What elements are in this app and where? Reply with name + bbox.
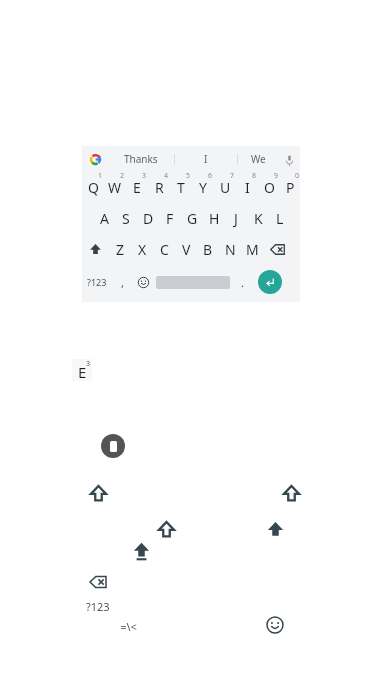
button[interactable]: We <box>238 146 278 172</box>
staticText: E <box>78 362 87 382</box>
button[interactable]: Shift <box>156 519 177 540</box>
button[interactable]: E <box>72 359 92 381</box>
button[interactable]: Shift <box>82 234 109 265</box>
staticText: 1 <box>98 171 103 181</box>
staticText: I <box>204 152 208 166</box>
button[interactable]: G <box>181 203 203 234</box>
staticText: W <box>108 178 122 197</box>
button[interactable]: T <box>170 172 192 203</box>
button[interactable]: Emoji <box>132 265 154 299</box>
button[interactable]: W <box>104 172 126 203</box>
staticText: D <box>143 209 154 228</box>
button[interactable]: ?123 <box>82 265 112 299</box>
button[interactable]: M <box>241 234 263 265</box>
staticText: 0 <box>295 171 300 181</box>
button[interactable]: B <box>197 234 219 265</box>
staticText: 5 <box>186 171 191 181</box>
button[interactable]: O <box>258 172 280 203</box>
staticText: C <box>160 240 169 259</box>
button[interactable]: . <box>232 265 252 299</box>
staticText: X <box>138 240 147 259</box>
button[interactable]: Caps lock <box>265 519 286 540</box>
staticText: . <box>241 275 244 290</box>
staticText: 7 <box>230 171 235 181</box>
staticText: Q <box>88 178 99 197</box>
staticText: M <box>246 240 259 259</box>
staticText: 3 <box>86 359 91 369</box>
button[interactable]: E <box>126 172 148 203</box>
staticText: Z <box>116 240 125 259</box>
staticText: U <box>220 178 231 197</box>
staticText: 8 <box>252 171 257 181</box>
staticText: P <box>286 178 295 197</box>
staticText: V <box>182 240 191 259</box>
button[interactable]: I <box>175 146 237 172</box>
button[interactable]: , <box>112 265 132 299</box>
button[interactable]: K <box>247 203 269 234</box>
button[interactable]: L <box>269 203 291 234</box>
button[interactable]: D <box>137 203 159 234</box>
staticText: E <box>133 178 141 197</box>
staticText: Y <box>199 178 207 197</box>
button[interactable]: I <box>236 172 258 203</box>
staticText: J <box>234 209 238 228</box>
button[interactable]: Enter <box>252 265 288 299</box>
button[interactable]: Y <box>192 172 214 203</box>
staticText: 4 <box>164 171 169 181</box>
staticText: , <box>121 275 124 290</box>
staticText: O <box>264 178 275 197</box>
button[interactable]: Shift <box>281 483 302 504</box>
staticText: H <box>209 209 220 228</box>
button[interactable]: Z <box>109 234 131 265</box>
button[interactable]: Backspace <box>263 234 292 265</box>
staticText: Thanks <box>124 152 158 166</box>
staticText: ?123 <box>86 599 118 614</box>
button[interactable]: =\< <box>112 618 144 634</box>
staticText: A <box>100 209 109 228</box>
staticText: R <box>155 178 164 197</box>
staticText: K <box>254 209 263 228</box>
button[interactable]: Emoji <box>265 615 285 635</box>
staticText: We <box>251 152 266 166</box>
staticText: =\< <box>120 619 137 634</box>
button[interactable]: Thanks <box>108 146 174 172</box>
button[interactable]: Voice input <box>278 146 300 172</box>
staticText: N <box>225 240 236 259</box>
button[interactable]: Backspace <box>88 572 108 592</box>
button[interactable]: C <box>153 234 175 265</box>
button[interactable]: A <box>93 203 115 234</box>
button[interactable]: ?123 <box>86 598 118 614</box>
button[interactable]: U <box>214 172 236 203</box>
button[interactable]: R <box>148 172 170 203</box>
staticText: 3 <box>142 171 147 181</box>
button[interactable]: Blank key <box>101 434 125 458</box>
button[interactable]: Caps lock <box>131 541 152 562</box>
button[interactable]: S <box>115 203 137 234</box>
staticText: T <box>177 178 185 197</box>
staticText: 6 <box>208 171 213 181</box>
button[interactable]: X <box>131 234 153 265</box>
button[interactable]: P <box>280 172 300 203</box>
button[interactable]: F <box>159 203 181 234</box>
button[interactable]: J <box>225 203 247 234</box>
staticText: 2 <box>120 171 125 181</box>
staticText: ?123 <box>87 276 107 288</box>
button[interactable]: N <box>219 234 241 265</box>
staticText: B <box>203 240 213 259</box>
button[interactable] <box>154 265 232 299</box>
button[interactable]: H <box>203 203 225 234</box>
button[interactable]: Shift <box>88 483 109 504</box>
button[interactable]: Q <box>82 172 104 203</box>
staticText: 9 <box>274 171 279 181</box>
button[interactable]: V <box>175 234 197 265</box>
button[interactable]: Google <box>82 146 108 172</box>
staticText: G <box>187 209 198 228</box>
staticText: I <box>245 178 250 197</box>
staticText: L <box>276 209 284 228</box>
staticText: S <box>122 209 130 228</box>
staticText: F <box>166 209 174 228</box>
